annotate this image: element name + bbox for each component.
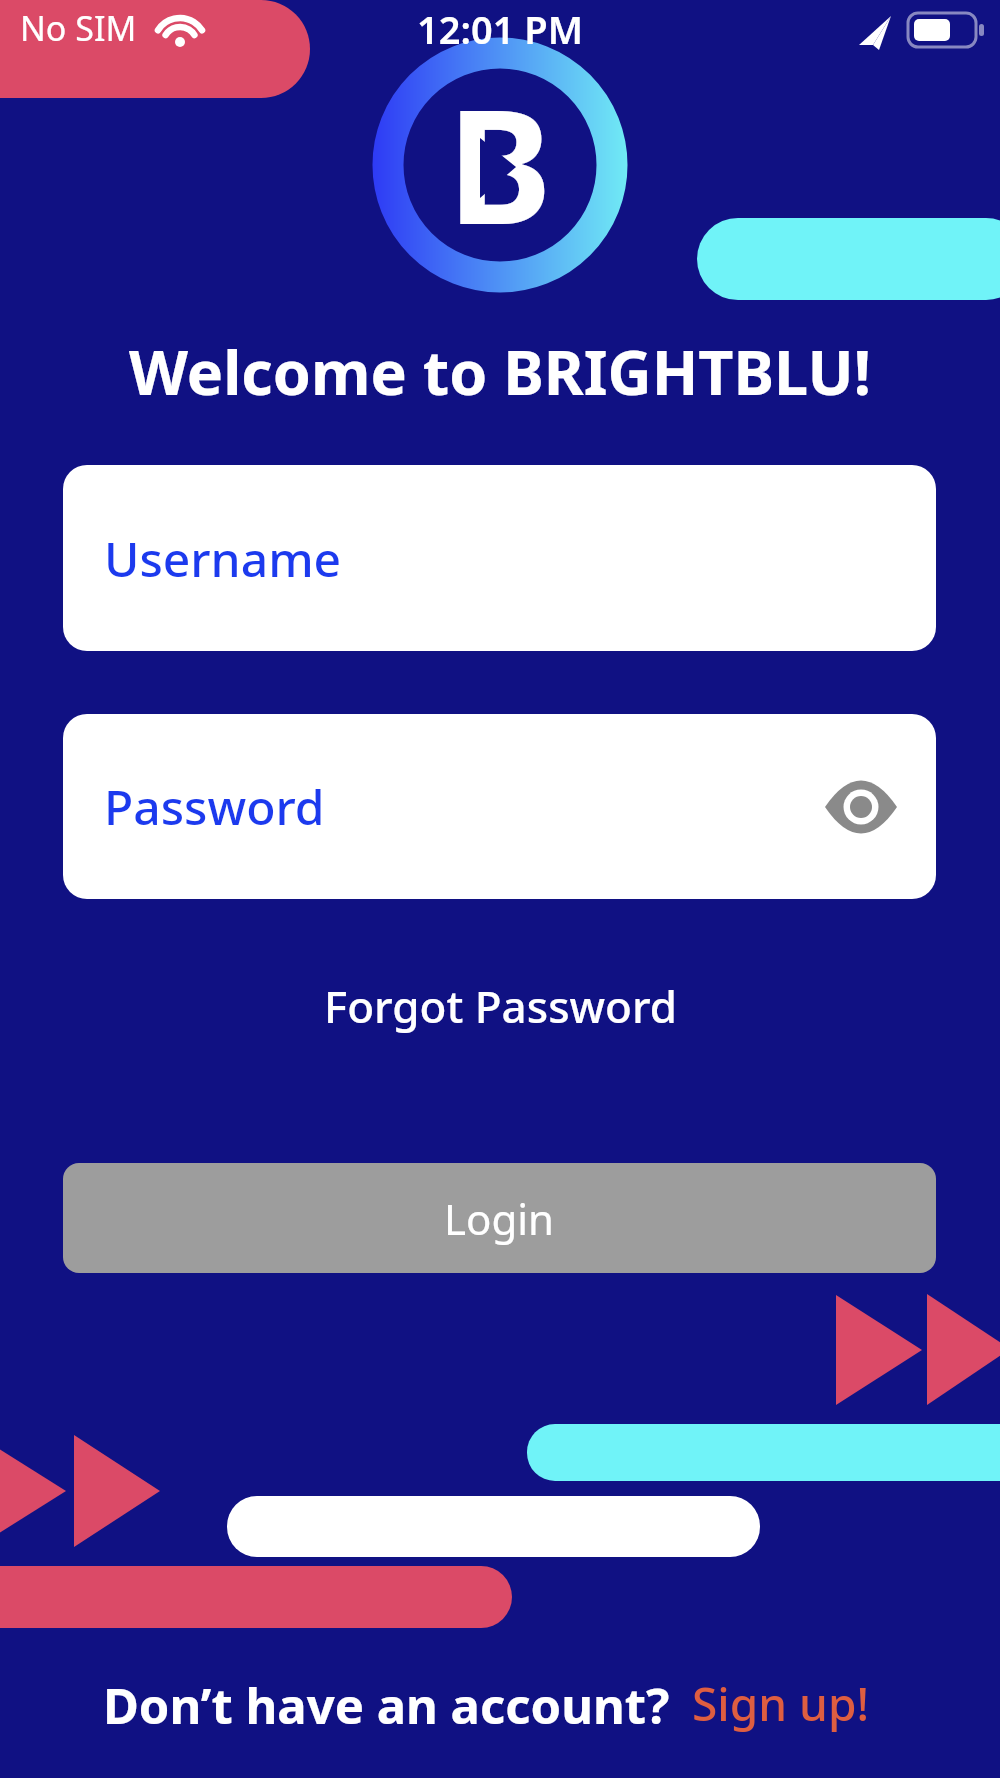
staticText: Welcome to BRIGHTBLU! (129, 330, 871, 406)
staticText: Username (104, 526, 342, 591)
staticText: Login (444, 1190, 555, 1247)
staticText: No SIM (20, 5, 137, 51)
staticText: Don’t have an account? (103, 1672, 670, 1734)
staticText: 12:01 PM (417, 3, 583, 53)
button[interactable]: Forgot Password (324, 976, 677, 1036)
staticText: Password (104, 774, 325, 839)
button[interactable]: Username (63, 465, 936, 651)
button[interactable]: Password (63, 714, 936, 899)
button[interactable]: Sign up! (692, 1672, 869, 1734)
staticText: B (447, 55, 553, 270)
button[interactable]: Login (63, 1163, 936, 1273)
